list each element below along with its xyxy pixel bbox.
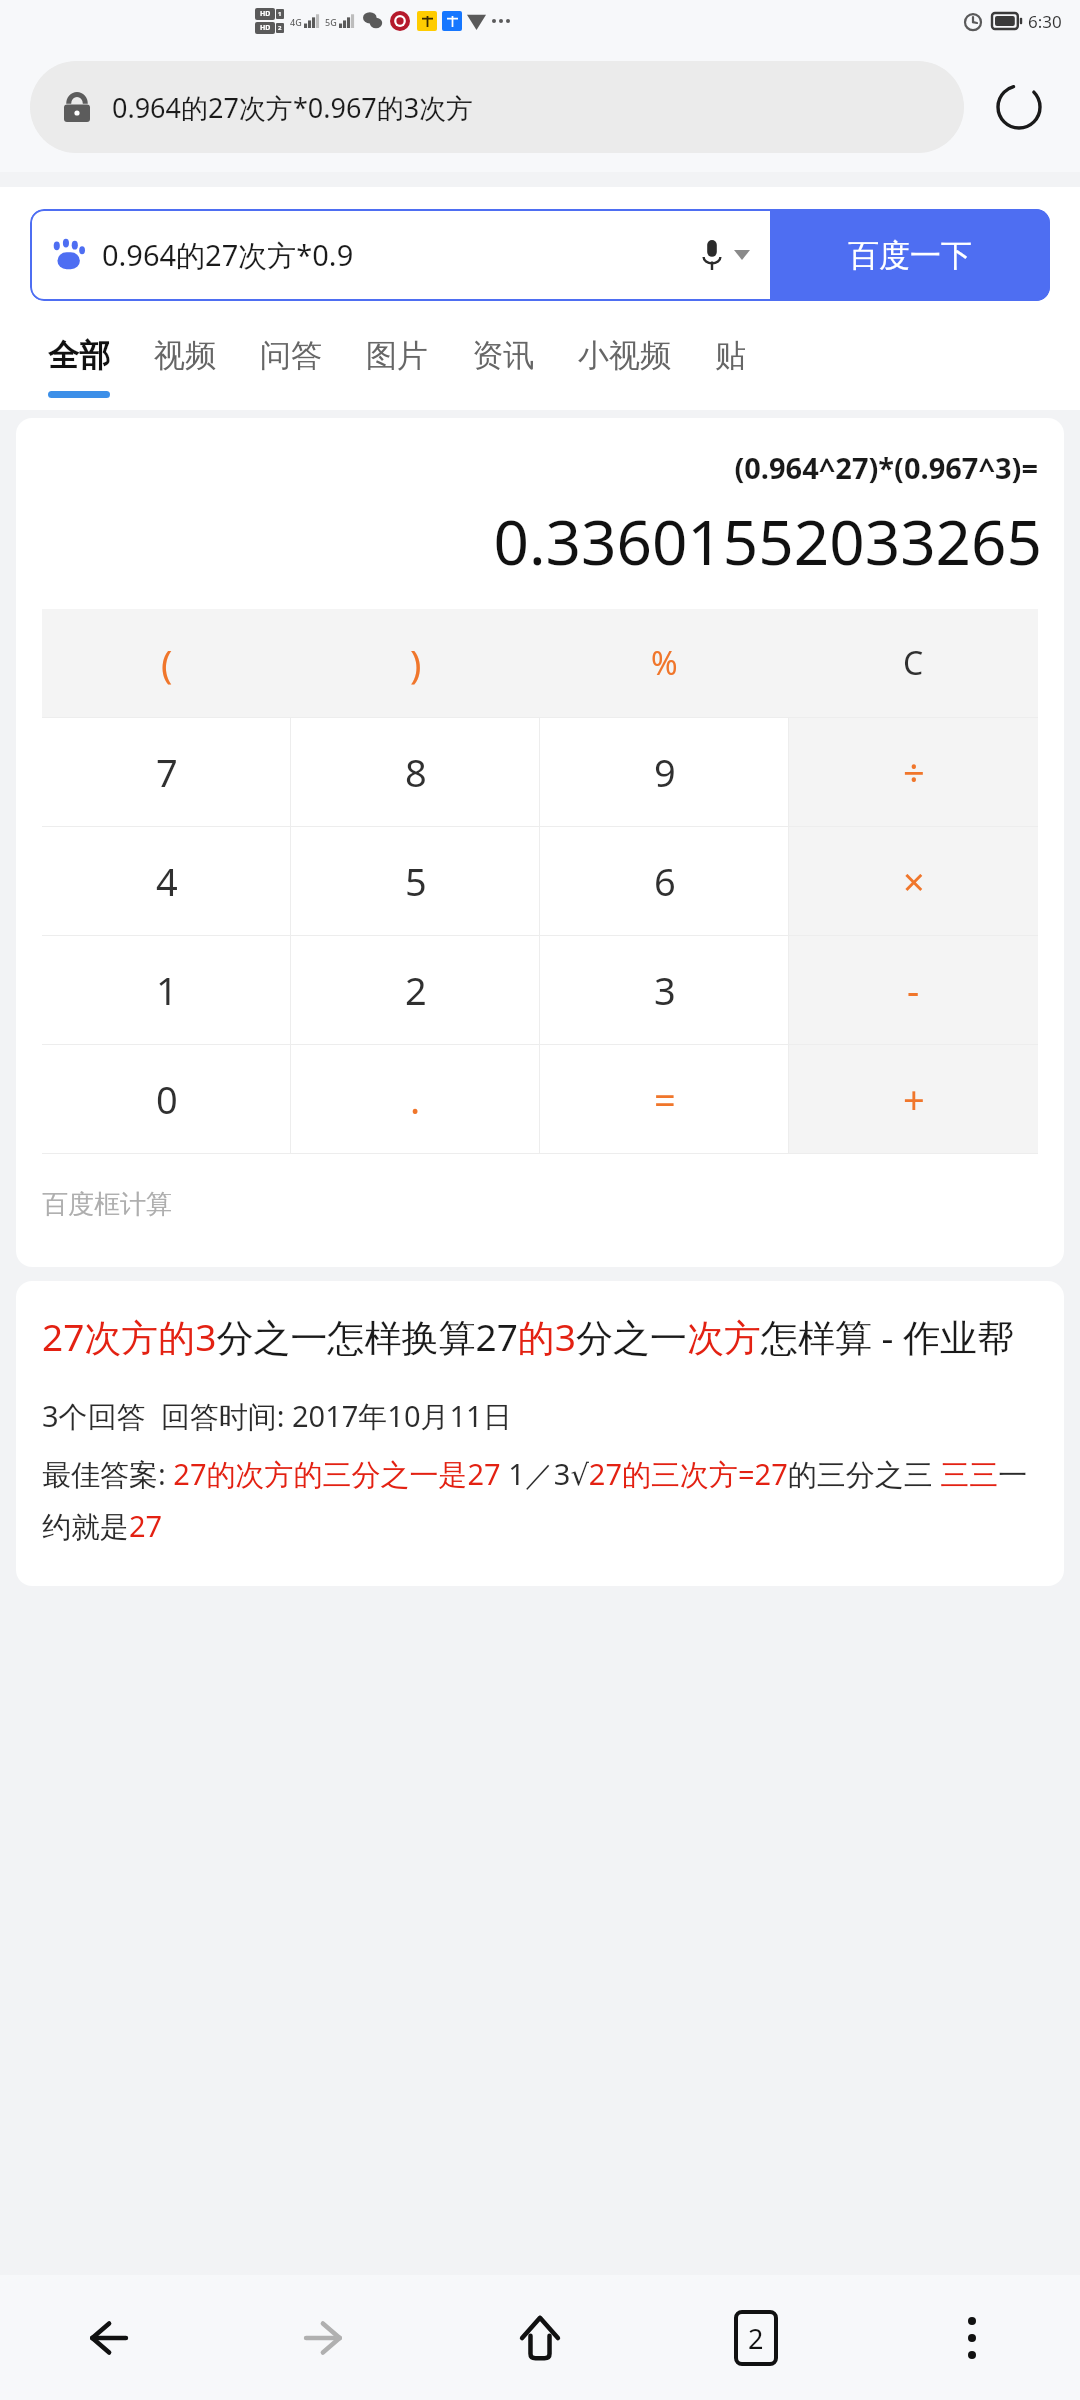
staticText: 1 xyxy=(278,10,282,18)
button[interactable]: 贴 xyxy=(693,322,768,391)
button[interactable]: Reload xyxy=(988,76,1050,138)
staticText: 0.964的27次方*0.967的3次方 xyxy=(112,89,474,126)
button[interactable]: - xyxy=(789,936,1038,1044)
button[interactable]: 问答 xyxy=(238,322,344,391)
button[interactable]: 5 xyxy=(291,827,540,935)
button[interactable]: Back xyxy=(0,2275,216,2400)
staticText: 百度框计算 xyxy=(42,1188,172,1221)
staticText: 资讯 xyxy=(472,336,534,375)
staticText: 7 xyxy=(156,746,178,798)
staticText: 百度一下 xyxy=(848,236,972,275)
button[interactable]: 7 xyxy=(42,718,291,826)
button[interactable]: 全部 xyxy=(26,322,132,398)
staticText: 0 xyxy=(156,1073,178,1125)
button[interactable]: Forward xyxy=(216,2275,432,2400)
staticText: 贴 xyxy=(715,336,746,375)
staticText: 5G xyxy=(325,16,337,28)
staticText: = xyxy=(654,1073,676,1125)
button[interactable]: 小视频 xyxy=(556,322,693,391)
staticText: 5 xyxy=(405,855,427,907)
button[interactable]: 0.964的27次方*0.9 xyxy=(30,209,770,301)
staticText: 6 xyxy=(654,855,676,907)
button[interactable]: % xyxy=(540,609,789,717)
staticText: + xyxy=(903,1073,925,1125)
staticText: 2 xyxy=(278,24,282,32)
staticText: (0.964^27)*(0.967^3)= xyxy=(16,448,1038,487)
button[interactable]: ) xyxy=(291,609,540,717)
button[interactable]: 视频 xyxy=(132,322,238,391)
staticText: × xyxy=(903,855,925,907)
button[interactable]: 27次方的3分之一怎样换算27的3分之一次方怎样算 - 作业帮 xyxy=(16,1281,1064,1586)
button[interactable]: 4 xyxy=(42,827,291,935)
staticText: 小视频 xyxy=(578,336,671,375)
staticText: ) xyxy=(410,637,422,689)
staticText: ÷ xyxy=(903,746,925,798)
staticText: % xyxy=(651,641,678,685)
staticText: C xyxy=(903,641,924,685)
button[interactable]: Tabs xyxy=(648,2275,864,2400)
button[interactable]: 资讯 xyxy=(450,322,556,391)
button[interactable]: 9 xyxy=(540,718,789,826)
staticText: ( xyxy=(161,637,173,689)
staticText: 视频 xyxy=(154,336,216,375)
button[interactable]: 6 xyxy=(540,827,789,935)
button[interactable]: 8 xyxy=(291,718,540,826)
staticText: - xyxy=(907,964,920,1016)
button[interactable]: 0.964的27次方*0.967的3次方 xyxy=(30,61,964,153)
button[interactable]: 0 xyxy=(42,1045,291,1153)
button[interactable]: 1 xyxy=(42,936,291,1044)
staticText: 全部 xyxy=(48,336,110,375)
staticText: 0.33601552033265 xyxy=(16,499,1042,583)
button[interactable]: + xyxy=(789,1045,1038,1153)
button[interactable]: Home xyxy=(432,2275,648,2400)
button[interactable]: More xyxy=(864,2275,1080,2400)
staticText: . xyxy=(410,1073,421,1125)
button[interactable]: 2 xyxy=(291,936,540,1044)
staticText: 6:30 xyxy=(1028,10,1062,33)
staticText: 27次方的3分之一怎样换算27的3分之一次方怎样算 - 作业帮 xyxy=(42,1311,1015,1362)
staticText: 1 xyxy=(156,964,178,1016)
staticText: 2 xyxy=(748,2320,764,2357)
staticText: HD xyxy=(260,9,271,19)
staticText: HD xyxy=(260,23,271,33)
button[interactable]: = xyxy=(540,1045,789,1153)
button[interactable]: 3 xyxy=(540,936,789,1044)
button[interactable]: 百度一下 xyxy=(770,209,1050,301)
button[interactable]: . xyxy=(291,1045,540,1153)
button[interactable]: ÷ xyxy=(789,718,1038,826)
staticText: 4G xyxy=(290,16,302,28)
button[interactable]: (0.964^27)*(0.967^3)= xyxy=(16,418,1064,1267)
button[interactable]: × xyxy=(789,827,1038,935)
staticText: 0.964的27次方*0.9 xyxy=(102,235,354,275)
staticText: 8 xyxy=(405,746,427,798)
staticText: 2 xyxy=(405,964,427,1016)
staticText: 图片 xyxy=(366,336,428,375)
button[interactable]: ( xyxy=(42,609,291,717)
staticText: 3 xyxy=(654,964,676,1016)
staticText: 9 xyxy=(654,746,676,798)
staticText: 最佳答案: 27的次方的三分之一是27 1／3√27的三次方=27的三分之三 三… xyxy=(42,1454,1038,1546)
staticText: 4 xyxy=(156,855,178,907)
staticText: 3个回答 回答时间: 2017年10月11日 xyxy=(42,1396,512,1436)
staticText: 问答 xyxy=(260,336,322,375)
button[interactable]: C xyxy=(789,609,1038,717)
button[interactable]: 图片 xyxy=(344,322,450,391)
